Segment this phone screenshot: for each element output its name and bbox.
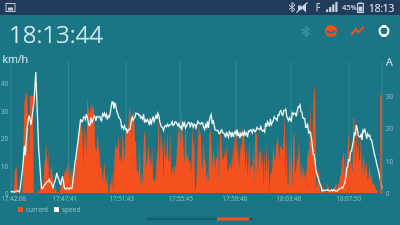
button[interactable]: Watch	[370, 18, 398, 44]
staticText: speed	[62, 205, 81, 214]
button[interactable]: Rider	[318, 18, 344, 44]
staticText: current	[26, 205, 49, 214]
button[interactable]: Bluetooth	[292, 18, 318, 44]
button[interactable]: Chart	[344, 18, 370, 44]
button[interactable]: current	[18, 205, 81, 214]
staticText: 18:13:44	[9, 17, 103, 50]
